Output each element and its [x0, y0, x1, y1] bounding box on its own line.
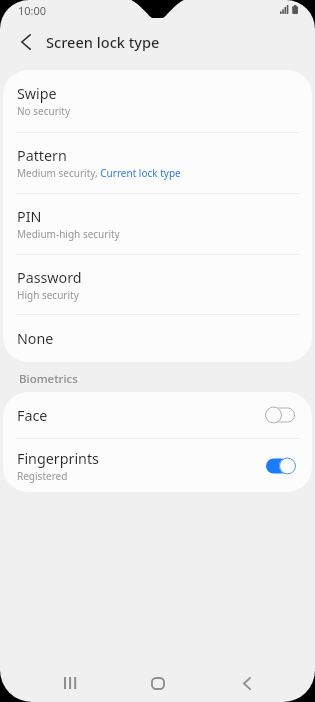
- staticText: No security: [17, 104, 71, 118]
- button[interactable]: Home: [136, 667, 180, 699]
- button[interactable]: None: [3, 315, 312, 362]
- button[interactable]: Pattern: [3, 133, 312, 193]
- button[interactable]: Face: [3, 392, 312, 438]
- staticText: High security: [17, 288, 79, 302]
- staticText: Registered: [17, 469, 68, 483]
- button[interactable]: Toggle on: [266, 457, 295, 475]
- staticText: None: [17, 329, 54, 348]
- staticText: Biometrics: [19, 371, 78, 387]
- staticText: Screen lock type: [46, 32, 160, 52]
- button[interactable]: Fingerprints: [3, 439, 312, 492]
- staticText: Fingerprints: [17, 449, 99, 468]
- button[interactable]: Toggle off: [266, 406, 295, 424]
- button[interactable]: Back: [225, 667, 269, 699]
- staticText: Swipe: [17, 84, 57, 103]
- staticText: Medium-high security: [17, 227, 120, 241]
- staticText: Pattern: [17, 146, 67, 165]
- button[interactable]: PIN: [3, 194, 312, 254]
- button[interactable]: Navigate up: [11, 26, 41, 58]
- staticText: Password: [17, 268, 82, 287]
- staticText: PIN: [17, 207, 42, 226]
- staticText: Face: [17, 406, 48, 425]
- button[interactable]: Password: [3, 255, 312, 314]
- staticText: Medium security, Current lock type: [17, 166, 181, 180]
- button[interactable]: Recent apps: [48, 667, 92, 699]
- button[interactable]: Swipe: [3, 70, 312, 132]
- staticText: 10:00: [18, 3, 47, 18]
